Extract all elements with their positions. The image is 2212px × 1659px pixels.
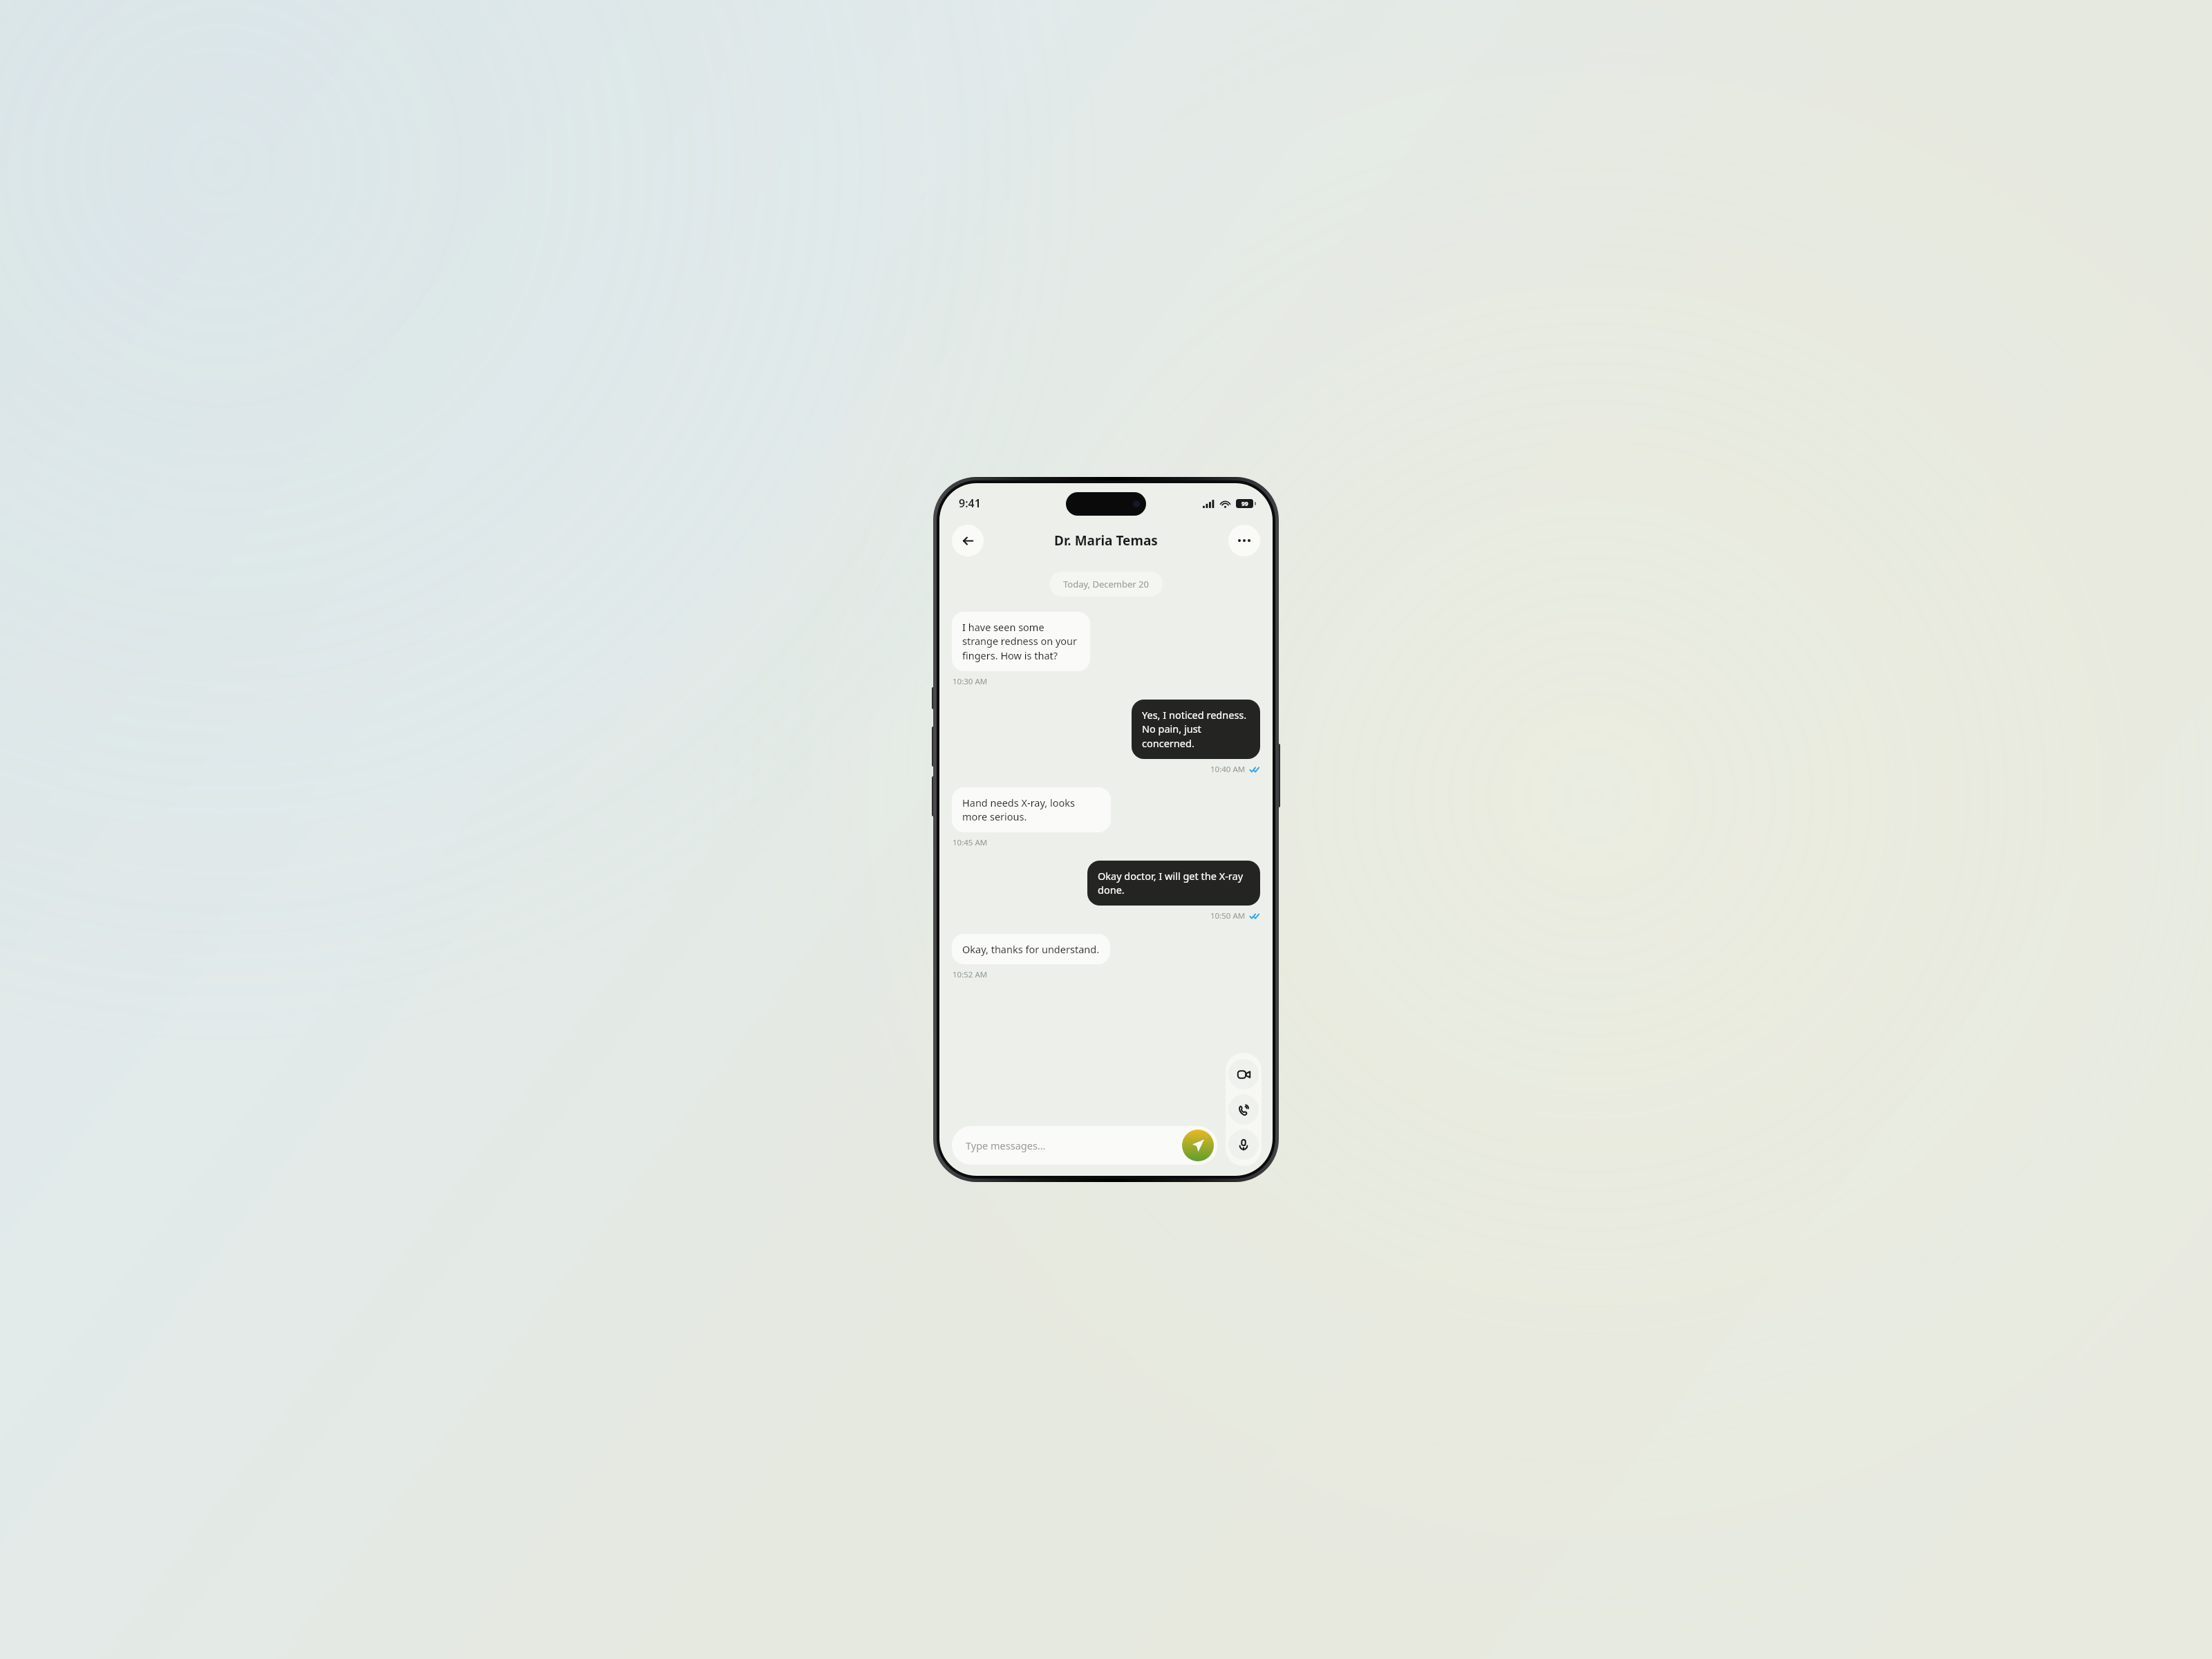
button[interactable]: Type messages...	[952, 1126, 1217, 1165]
button[interactable]: Back	[952, 525, 984, 556]
staticText: 10:52 AM	[953, 969, 988, 980]
staticText: 10:50 AM	[1210, 910, 1246, 921]
staticText: 10:45 AM	[953, 837, 988, 848]
staticText: 10:30 AM	[953, 676, 988, 687]
button[interactable]: Okay doctor, I will get the X-ray done.	[1087, 861, 1260, 906]
button[interactable]: More options	[1228, 525, 1260, 556]
button[interactable]: Send	[1182, 1130, 1214, 1161]
staticText: Hand needs X-ray, looks more serious.	[962, 796, 1100, 824]
staticText: 10:40 AM	[1210, 764, 1246, 775]
staticText: 9:41	[959, 496, 981, 511]
button[interactable]: Voice message	[1228, 1130, 1259, 1160]
button[interactable]: Voice call	[1228, 1094, 1259, 1125]
button[interactable]: Yes, I noticed redness. No pain, just co…	[1132, 700, 1260, 759]
staticText: Today, December 20	[1063, 578, 1149, 590]
staticText: Okay doctor, I will get the X-ray done.	[1098, 869, 1250, 897]
staticText: Dr. Maria Temas	[1054, 532, 1158, 550]
button[interactable]: Okay, thanks for understand.	[952, 934, 1110, 964]
button[interactable]: Hand needs X-ray, looks more serious.	[952, 787, 1111, 832]
button[interactable]: Today, December 20	[1049, 572, 1163, 597]
staticText: I have seen some strange redness on your…	[962, 620, 1080, 663]
staticText: Yes, I noticed redness. No pain, just co…	[1142, 708, 1250, 751]
button[interactable]: Video call	[1228, 1059, 1259, 1089]
staticText: Type messages...	[966, 1138, 1046, 1152]
staticText: 99	[1241, 500, 1248, 508]
staticText: Okay, thanks for understand.	[962, 942, 1100, 956]
button[interactable]: I have seen some strange redness on your…	[952, 612, 1090, 671]
